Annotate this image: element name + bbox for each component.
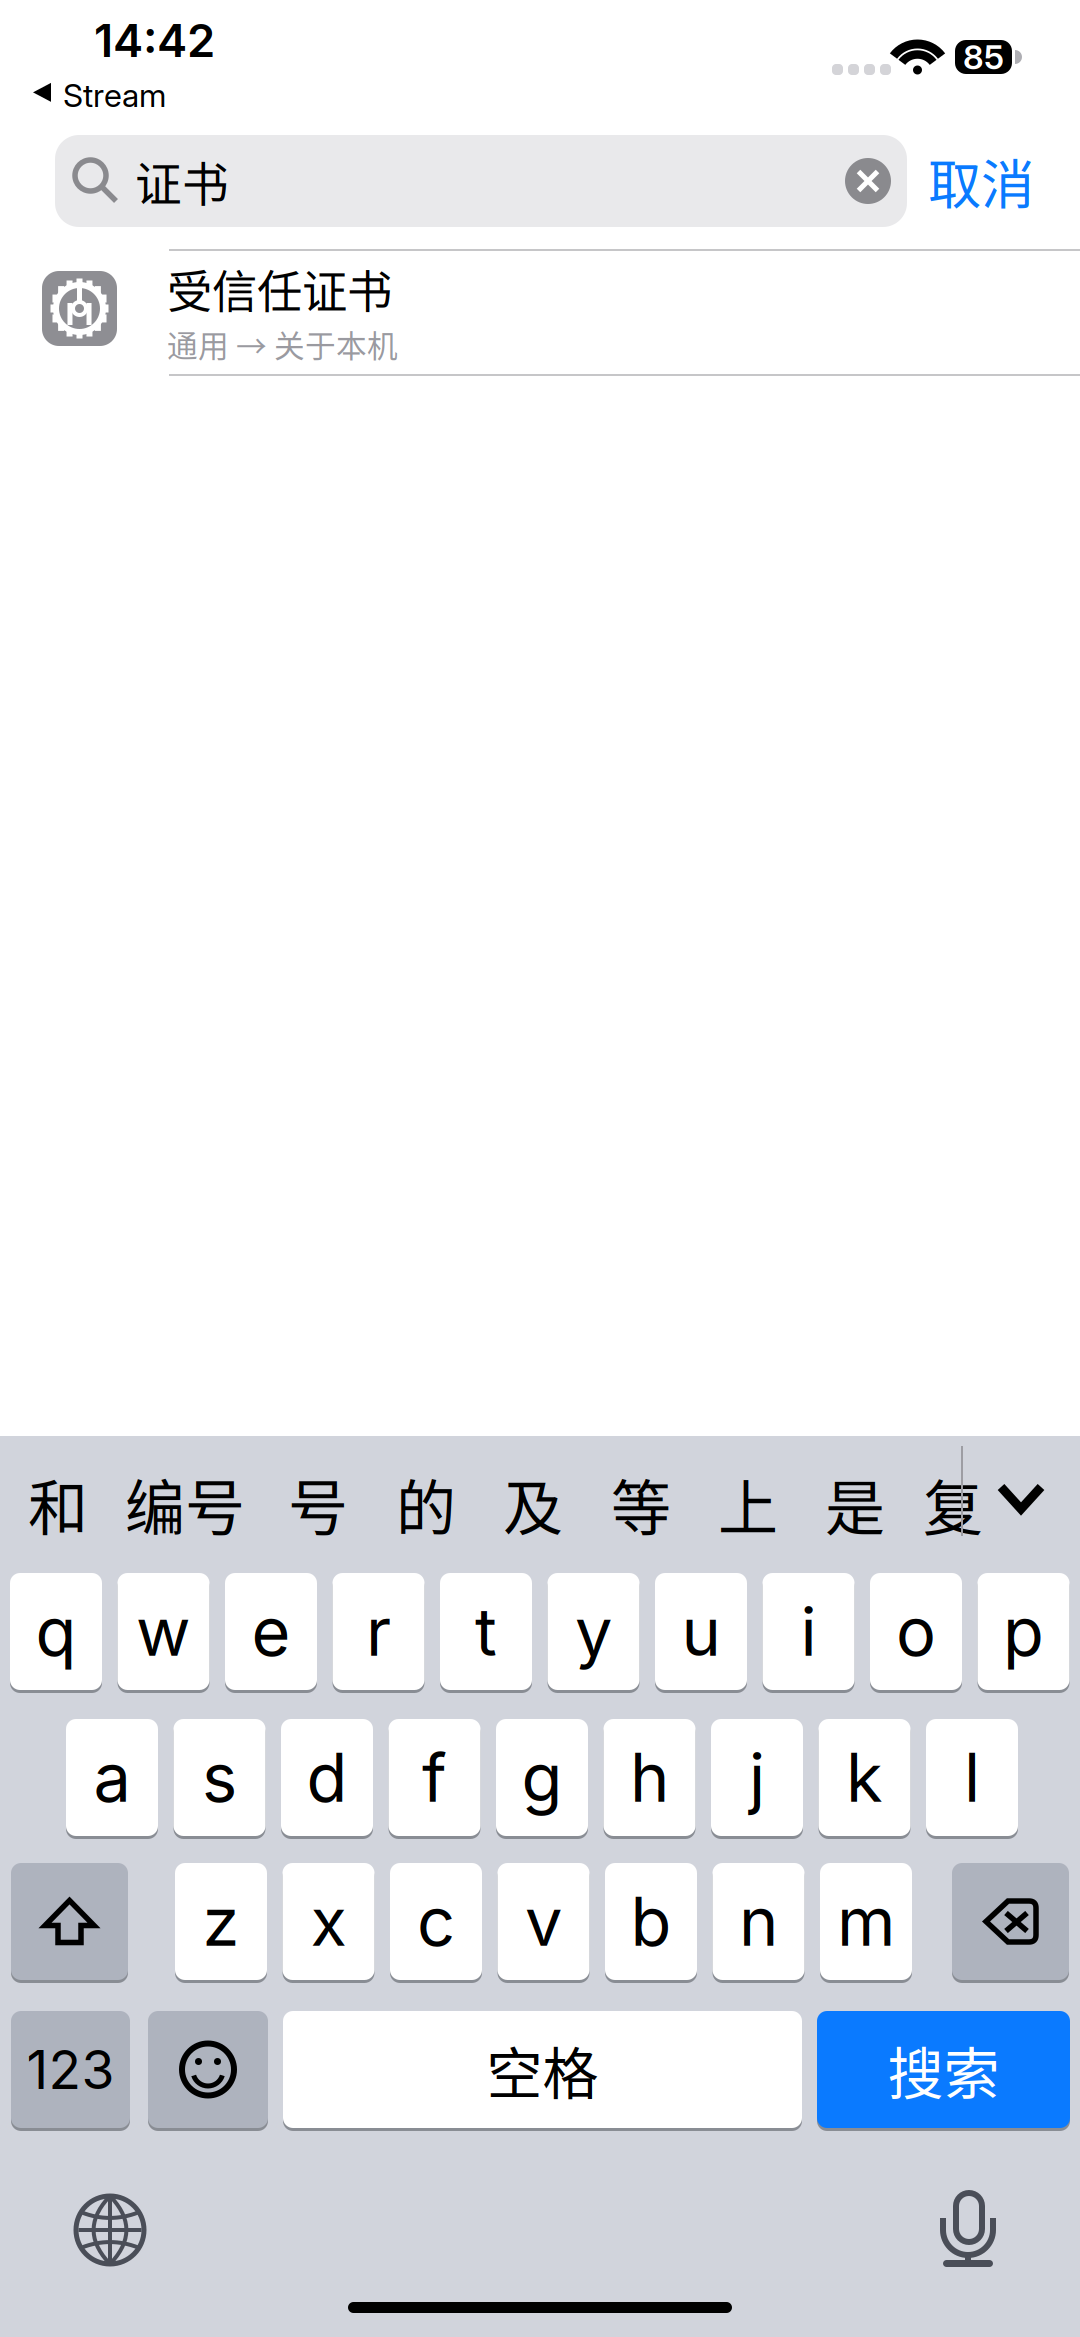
- staticText: 空格: [486, 2029, 598, 2110]
- button[interactable]: [11, 1863, 128, 1980]
- button[interactable]: w: [117, 1573, 209, 1690]
- button[interactable]: 证书: [55, 135, 907, 227]
- staticText: 等: [611, 1461, 671, 1547]
- button[interactable]: 是: [822, 1444, 888, 1564]
- button[interactable]: 的: [393, 1444, 459, 1564]
- button[interactable]: 受信任证书: [0, 235, 1080, 395]
- button[interactable]: 123: [11, 2011, 130, 2128]
- staticText: 和: [28, 1461, 88, 1547]
- button[interactable]: u: [655, 1573, 747, 1690]
- staticText: 85: [963, 37, 1004, 77]
- button[interactable]: n: [712, 1863, 804, 1980]
- button[interactable]: p: [977, 1573, 1069, 1690]
- staticText: r: [366, 1591, 391, 1672]
- button[interactable]: q: [10, 1573, 102, 1690]
- button[interactable]: x: [282, 1863, 374, 1980]
- staticText: f: [422, 1737, 447, 1818]
- staticText: 的: [396, 1461, 456, 1547]
- button[interactable]: e: [225, 1573, 317, 1690]
- button[interactable]: 号: [285, 1444, 351, 1564]
- button[interactable]: b: [605, 1863, 697, 1980]
- button[interactable]: [952, 1863, 1069, 1980]
- staticText: 复: [923, 1461, 983, 1547]
- button[interactable]: Stream: [33, 76, 166, 115]
- button[interactable]: v: [497, 1863, 589, 1980]
- button[interactable]: z: [175, 1863, 267, 1980]
- staticText: y: [575, 1591, 612, 1672]
- staticText: v: [525, 1881, 562, 1962]
- button[interactable]: r: [332, 1573, 424, 1690]
- button[interactable]: 上: [715, 1444, 781, 1564]
- button[interactable]: s: [173, 1719, 265, 1836]
- staticText: j: [749, 1737, 765, 1818]
- button[interactable]: 及: [500, 1444, 566, 1564]
- staticText: q: [35, 1591, 76, 1672]
- staticText: w: [136, 1591, 191, 1672]
- button[interactable]: c: [390, 1863, 482, 1980]
- staticText: m: [837, 1881, 895, 1962]
- button[interactable]: Hide candidates: [973, 1446, 1069, 1550]
- button[interactable]: h: [603, 1719, 695, 1836]
- button[interactable]: t: [440, 1573, 532, 1690]
- staticText: 通用 → 关于本机: [167, 322, 398, 366]
- button[interactable]: k: [818, 1719, 910, 1836]
- staticText: 是: [825, 1461, 885, 1547]
- staticText: 上: [718, 1461, 778, 1547]
- button[interactable]: Switch keyboard: [74, 2194, 146, 2266]
- button[interactable]: y: [547, 1573, 639, 1690]
- button[interactable]: 空格: [283, 2011, 802, 2128]
- staticText: x: [310, 1881, 346, 1962]
- staticText: 号: [288, 1461, 348, 1547]
- staticText: k: [846, 1737, 883, 1818]
- staticText: c: [417, 1881, 455, 1962]
- button[interactable]: o: [870, 1573, 962, 1690]
- staticText: 123: [26, 2037, 114, 2102]
- button[interactable]: 复: [920, 1444, 986, 1564]
- button[interactable]: 取消: [907, 135, 1055, 227]
- staticText: 及: [503, 1461, 563, 1547]
- button[interactable]: 编号: [115, 1444, 255, 1564]
- staticText: z: [202, 1881, 239, 1962]
- button[interactable]: 和: [25, 1444, 91, 1564]
- button[interactable]: f: [388, 1719, 480, 1836]
- staticText: t: [475, 1591, 497, 1672]
- staticText: 受信任证书: [167, 256, 392, 322]
- staticText: u: [681, 1591, 720, 1672]
- staticText: i: [800, 1591, 816, 1672]
- staticText: s: [202, 1737, 237, 1818]
- staticText: 取消: [928, 142, 1034, 220]
- staticText: 证书: [135, 147, 229, 215]
- staticText: e: [251, 1591, 290, 1672]
- staticText: 编号: [125, 1461, 245, 1547]
- button[interactable]: j: [711, 1719, 803, 1836]
- button[interactable]: 搜索: [817, 2011, 1070, 2128]
- button[interactable]: m: [820, 1863, 912, 1980]
- staticText: 搜索: [887, 2029, 999, 2110]
- staticText: 14:42: [94, 13, 215, 68]
- staticText: o: [896, 1591, 936, 1672]
- staticText: h: [630, 1737, 669, 1818]
- button[interactable]: i: [762, 1573, 854, 1690]
- button[interactable]: d: [281, 1719, 373, 1836]
- staticText: d: [306, 1737, 347, 1818]
- button[interactable]: a: [66, 1719, 158, 1836]
- button[interactable]: [148, 2011, 268, 2128]
- staticText: p: [1003, 1591, 1044, 1672]
- staticText: l: [964, 1737, 980, 1818]
- staticText: n: [739, 1881, 778, 1962]
- button[interactable]: l: [926, 1719, 1018, 1836]
- staticText: Stream: [63, 76, 166, 115]
- staticText: g: [521, 1737, 562, 1818]
- button[interactable]: g: [496, 1719, 588, 1836]
- staticText: a: [93, 1737, 130, 1818]
- button[interactable]: 等: [608, 1444, 674, 1564]
- button[interactable]: Dictation: [943, 2194, 993, 2266]
- staticText: b: [630, 1881, 671, 1962]
